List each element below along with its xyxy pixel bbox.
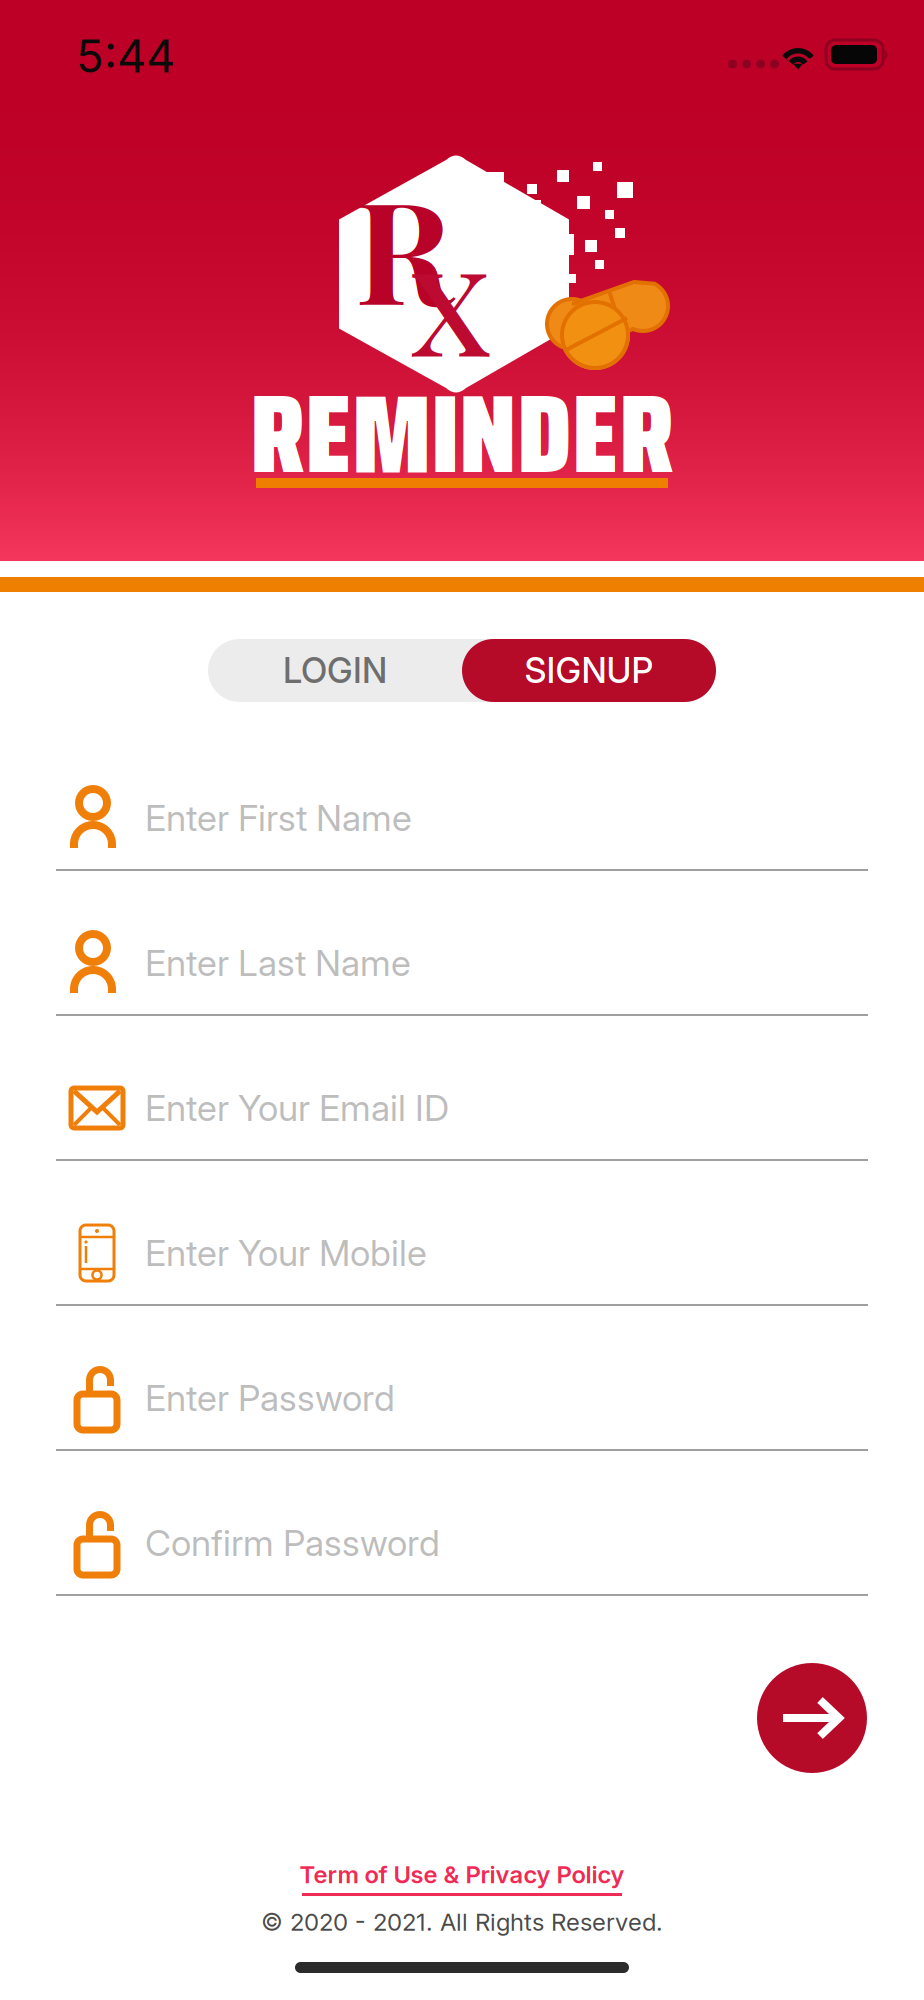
button[interactable]: Enter Your Email ID: [0, 1062, 924, 1207]
staticText: Enter Your Mobile: [145, 1231, 427, 1275]
button[interactable]: Enter First Name: [0, 772, 924, 917]
button[interactable]: Confirm Password: [0, 1497, 924, 1642]
staticText: SIGNUP: [524, 649, 653, 691]
staticText: LOGIN: [283, 649, 387, 691]
staticText: Enter Your Email ID: [145, 1086, 449, 1130]
staticText: R: [355, 152, 453, 340]
button[interactable]: Term of Use & Privacy Policy: [0, 1855, 924, 1901]
button[interactable]: Enter Last Name: [0, 917, 924, 1062]
staticText: Term of Use & Privacy Policy: [299, 1860, 624, 1889]
button[interactable]: LOGIN: [208, 639, 462, 702]
button[interactable]: Enter Your Mobile: [0, 1207, 924, 1352]
staticText: Enter First Name: [145, 796, 412, 840]
button[interactable]: Enter Password: [0, 1352, 924, 1497]
staticText: 5:44: [76, 29, 175, 83]
staticText: © 2020 - 2021. All Rights Reserved.: [261, 1907, 663, 1936]
button[interactable]: Continue: [757, 1663, 867, 1773]
button[interactable]: SIGNUP: [462, 639, 716, 702]
staticText: REMINDER: [250, 348, 674, 520]
staticText: x: [408, 183, 491, 397]
staticText: Enter Last Name: [145, 941, 411, 985]
staticText: Confirm Password: [145, 1521, 440, 1565]
staticText: Enter Password: [145, 1376, 395, 1420]
